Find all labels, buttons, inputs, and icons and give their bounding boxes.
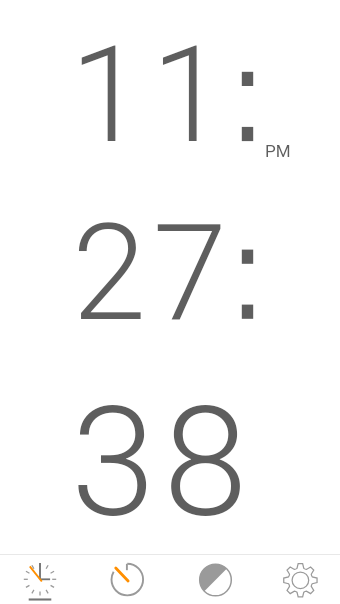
staticText: PM [265,141,291,161]
staticText: 11 [70,17,233,174]
button[interactable]: Settings [283,562,319,598]
staticText: 27 [72,195,234,352]
button[interactable]: Timer [108,562,144,598]
button[interactable]: Alarm [21,562,57,598]
button[interactable]: Stopwatch [196,562,232,598]
staticText: 38 [71,374,256,552]
